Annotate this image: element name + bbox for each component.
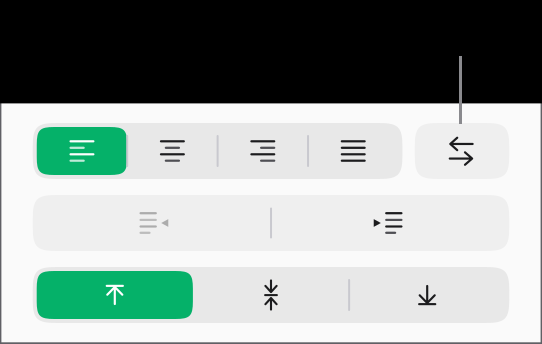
button[interactable]: Align centre <box>127 127 218 175</box>
button[interactable]: Align bottom <box>349 271 505 319</box>
button[interactable]: Align left <box>37 127 127 175</box>
button[interactable]: Decrease indent <box>37 199 271 247</box>
button[interactable]: Justify <box>308 127 398 175</box>
button[interactable]: Align top <box>37 271 193 319</box>
button[interactable]: Increase indent <box>271 199 505 247</box>
button[interactable]: Align middle <box>193 271 349 319</box>
button[interactable]: Align right <box>218 127 308 175</box>
button[interactable]: Writing direction <box>415 123 509 179</box>
